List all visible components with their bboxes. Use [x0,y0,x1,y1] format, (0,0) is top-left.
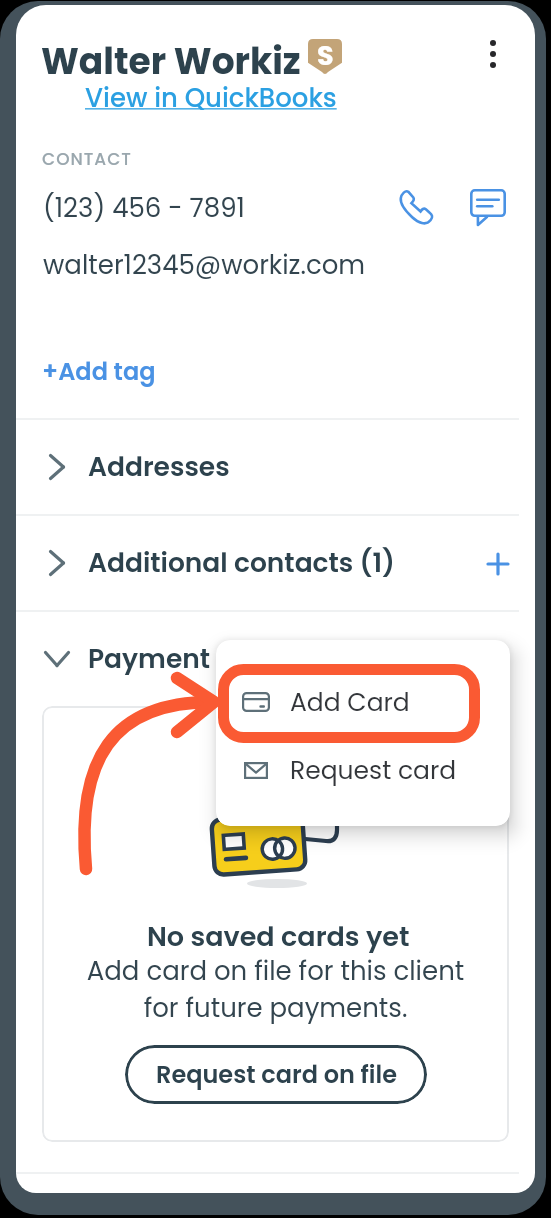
staticText: CONTACT [42,147,132,171]
button[interactable]: View in QuickBooks [85,80,337,116]
staticText: +Add tag [42,355,156,389]
staticText: Add card on file for this client for fut… [42,953,509,1026]
button[interactable]: Call [394,185,438,229]
staticText: Additional contacts (1) [88,544,395,581]
button[interactable]: Additional contacts (1) [16,515,519,610]
button[interactable]: Message [466,185,510,229]
staticText: No saved cards yet [147,918,410,956]
staticText: walter12345@workiz.com [43,247,366,283]
button[interactable]: +Add tag [42,355,156,389]
button[interactable]: Add contact [479,545,517,583]
button[interactable]: Request card on file [125,1045,427,1104]
button[interactable]: Add Card [216,668,510,736]
staticText: (123) 456 - 7891 [43,190,245,226]
button[interactable]: More options [473,34,513,74]
button[interactable]: Request card [216,736,510,804]
staticText: Add Card [290,685,410,720]
button[interactable]: Addresses [16,419,519,514]
staticText: View in QuickBooks [85,80,337,116]
staticText: Payment methods [88,640,338,677]
staticText: S [317,37,334,74]
staticText: Request card on file [156,1058,397,1092]
button[interactable]: Payment methods [16,611,519,706]
staticText: Addresses [88,448,230,485]
staticText: Walter Workiz [41,36,301,86]
staticText: Request card [290,753,457,788]
